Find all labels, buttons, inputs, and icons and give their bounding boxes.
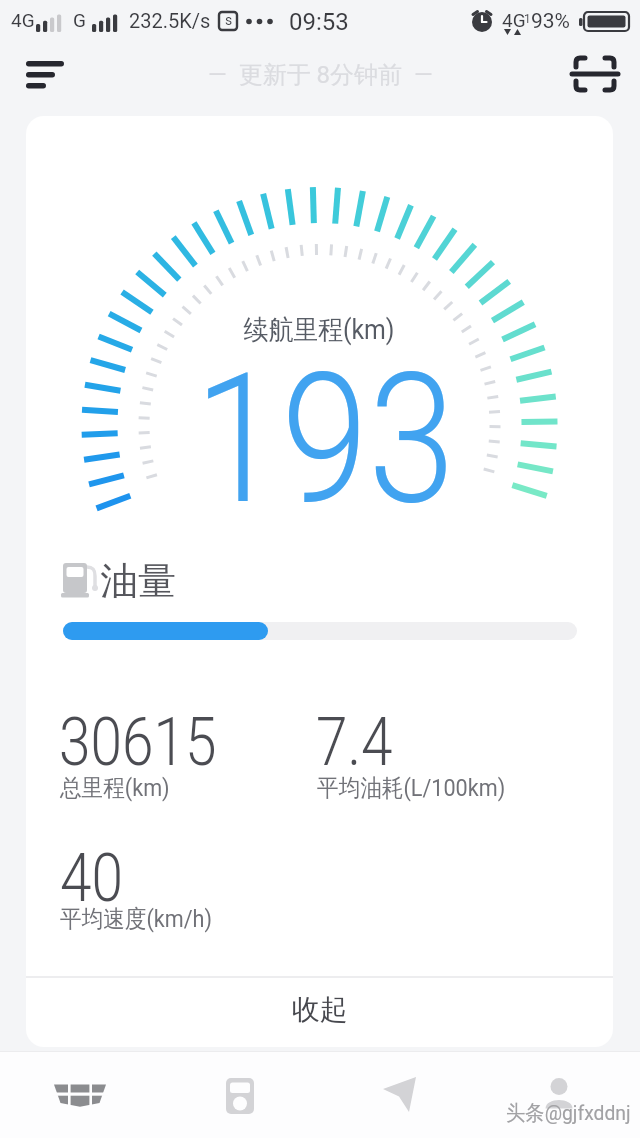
button[interactable]	[562, 48, 630, 108]
staticText: — 更新于 8分钟前 —	[208, 60, 433, 90]
staticText: 30615	[59, 704, 217, 781]
staticText: 头条@gjfxddnj	[506, 1100, 631, 1126]
staticText: 平均速度(km/h)	[60, 904, 212, 934]
button[interactable]: 收起	[26, 972, 613, 1047]
staticText: 油量	[100, 557, 176, 605]
staticText: 收起	[292, 992, 348, 1027]
button[interactable]	[510, 1061, 610, 1131]
staticText: 93%	[531, 9, 570, 34]
staticText: 总里程(km)	[60, 773, 170, 803]
staticText: 续航里程(km)	[244, 313, 395, 347]
button[interactable]	[350, 1061, 450, 1131]
staticText: 平均油耗(L/100km)	[317, 773, 506, 803]
staticText: 1	[524, 12, 531, 26]
staticText: G	[73, 9, 86, 31]
staticText: 232.5K/s	[129, 9, 211, 32]
button[interactable]	[10, 48, 74, 108]
button[interactable]	[30, 1061, 130, 1131]
staticText: 4G	[11, 9, 35, 31]
staticText: 40	[60, 840, 124, 917]
staticText: s	[225, 12, 233, 28]
staticText: 09:53	[289, 8, 349, 36]
button[interactable]	[190, 1061, 290, 1131]
staticText: 7.4	[316, 704, 392, 781]
staticText: 4G	[502, 9, 526, 31]
staticText: 193	[194, 334, 455, 545]
